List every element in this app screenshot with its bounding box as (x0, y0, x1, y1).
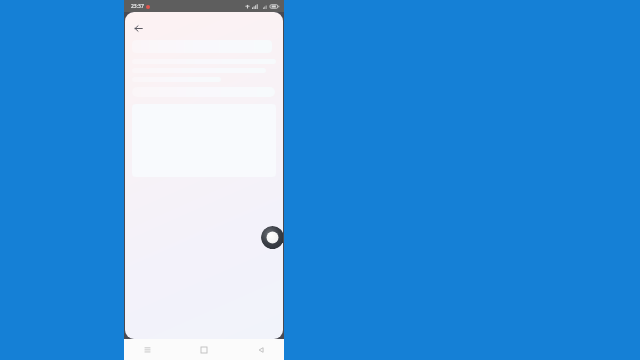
button[interactable]: Back (129, 19, 147, 37)
button[interactable]: Home (195, 341, 213, 359)
staticText: 23:37 (131, 3, 144, 10)
button[interactable]: Back (252, 341, 270, 359)
button[interactable]: Recent apps (138, 341, 156, 359)
button[interactable]: Floating action (261, 226, 283, 249)
